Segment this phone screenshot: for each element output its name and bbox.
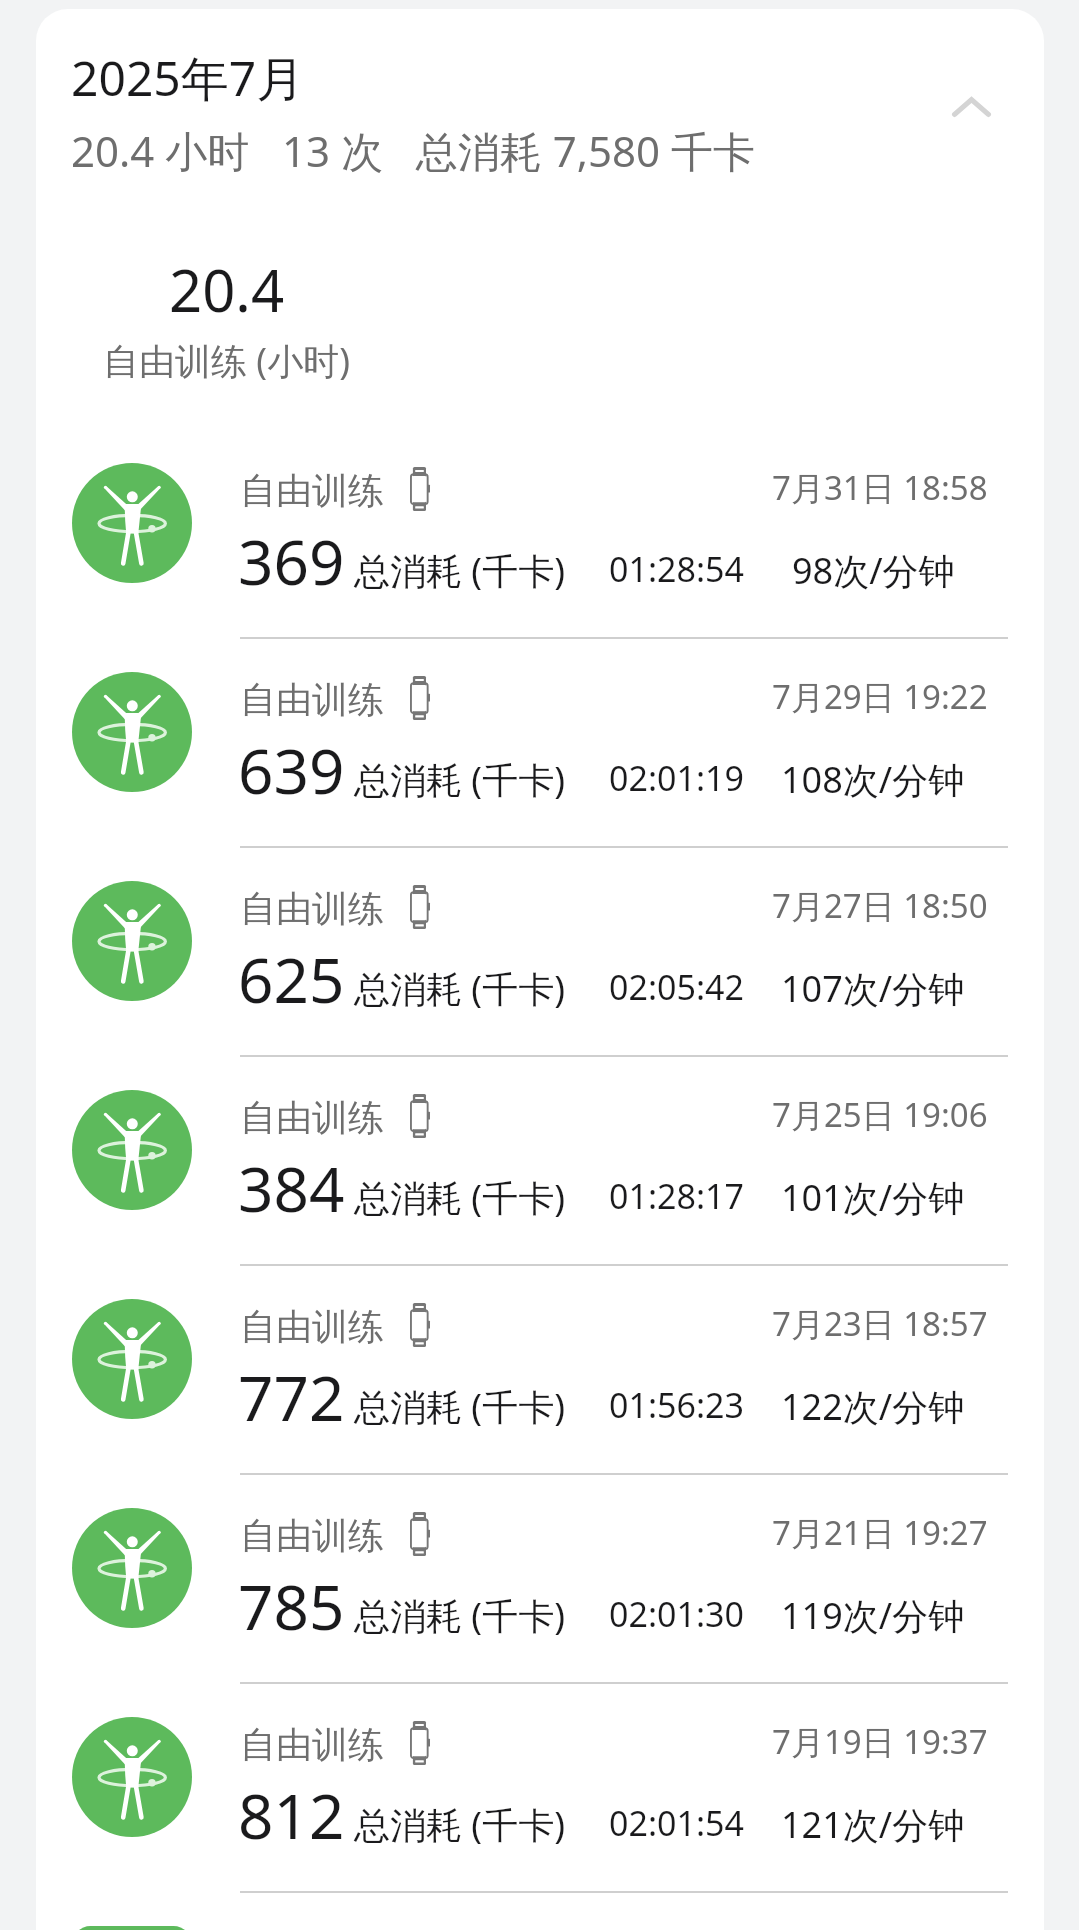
staticText: 772 [238,1355,345,1439]
staticText: 7月23日 18:57 [772,1301,988,1346]
staticText: 7月31日 18:58 [772,465,988,510]
staticText: 总消耗 (千卡) [354,1591,565,1640]
staticText: 107次/分钟 [781,964,965,1013]
staticText: 总消耗 (千卡) [354,755,565,804]
staticText: 812 [238,1773,345,1857]
staticText: 7月25日 19:06 [772,1092,988,1137]
button[interactable]: 自由训练 [36,1475,1044,1684]
staticText: 总消耗 (千卡) [354,1173,565,1222]
button[interactable]: 自由训练 [36,1684,1044,1893]
staticText: 625 [238,937,345,1021]
staticText: 01:28:17 [609,1173,744,1219]
other: 智能手表 Smart watch [410,1721,430,1765]
staticText: 总消耗 (千卡) [354,1800,565,1849]
staticText: 总消耗 (千卡) [354,964,565,1013]
button[interactable]: 自由训练 [36,430,1044,639]
button[interactable]: 自由训练 [36,1266,1044,1475]
button[interactable]: 自由训练 [36,1057,1044,1266]
staticText: 自由训练 [240,1095,384,1140]
staticText: 20.4 [169,250,285,329]
other: 智能手表 Smart watch [410,467,430,511]
staticText: 总消耗 (千卡) [354,546,565,595]
staticText: 自由训练 [240,468,384,513]
button[interactable]: 自由训练 [36,848,1044,1057]
other: 智能手表 Smart watch [410,885,430,929]
staticText: 02:01:30 [609,1591,744,1637]
staticText: 02:01:54 [609,1800,744,1846]
other: 智能手表 Smart watch [410,676,430,720]
staticText: 02:05:42 [609,964,744,1010]
button[interactable]: 收起 Collapse [919,55,1023,159]
staticText: 自由训练 (小时) [103,336,350,385]
staticText: 自由训练 [240,886,384,931]
button[interactable]: 自由训练 [36,1893,1044,1930]
staticText: 384 [238,1146,345,1230]
staticText: 2025年7月 [71,45,305,111]
staticText: 108次/分钟 [781,755,965,804]
staticText: 20.4 小时 13 次 总消耗 7,580 千卡 [71,122,755,179]
staticText: 98次/分钟 [792,546,955,595]
staticText: 7月29日 19:22 [772,674,988,719]
staticText: 369 [238,519,345,603]
staticText: 639 [238,728,345,812]
button[interactable]: 自由训练 [36,639,1044,848]
staticText: 122次/分钟 [781,1382,965,1431]
other: 智能手表 Smart watch [410,1303,430,1347]
staticText: 自由训练 [240,1513,384,1558]
staticText: 121次/分钟 [781,1800,965,1849]
staticText: 7月21日 19:27 [772,1510,988,1555]
staticText: 01:28:54 [609,546,744,592]
staticText: 101次/分钟 [781,1173,965,1222]
staticText: 7月19日 19:37 [772,1719,988,1764]
other: 智能手表 Smart watch [410,1094,430,1138]
staticText: 7月27日 18:50 [772,883,988,928]
other: 智能手表 Smart watch [410,1512,430,1556]
staticText: 自由训练 [240,677,384,722]
staticText: 自由训练 [240,1722,384,1767]
staticText: 02:01:19 [609,755,744,801]
staticText: 总消耗 (千卡) [354,1382,565,1431]
staticText: 785 [238,1564,345,1648]
staticText: 自由训练 [240,1304,384,1349]
staticText: 01:56:23 [609,1382,744,1428]
staticText: 119次/分钟 [781,1591,965,1640]
